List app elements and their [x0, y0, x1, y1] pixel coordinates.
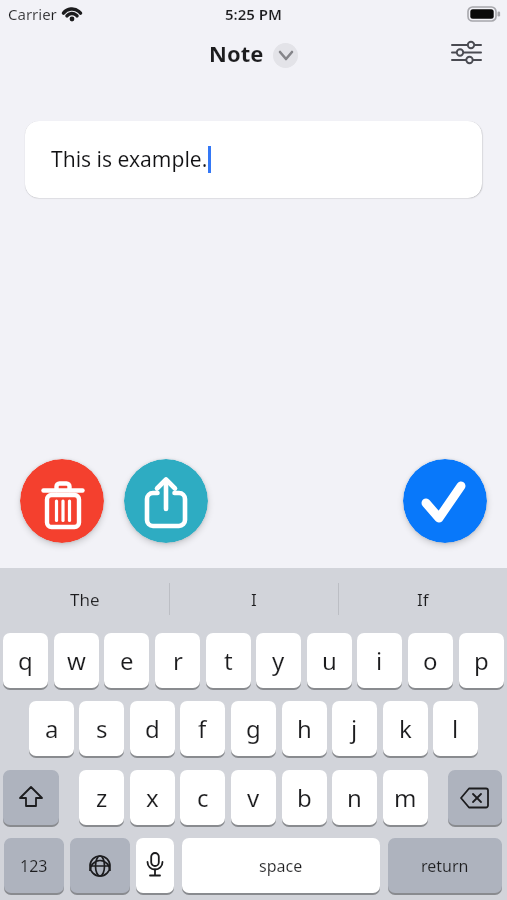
button[interactable]: d: [130, 701, 175, 756]
button[interactable]: k: [383, 701, 428, 756]
button[interactable]: o: [408, 633, 453, 688]
staticText: h: [297, 712, 312, 745]
staticText: I: [251, 588, 257, 611]
staticText: x: [146, 781, 159, 814]
staticText: 5:25 PM: [225, 4, 282, 24]
button[interactable]: e: [104, 633, 149, 688]
button[interactable]: x: [130, 770, 175, 825]
staticText: q: [18, 644, 33, 677]
staticText: d: [145, 712, 160, 745]
staticText: u: [322, 644, 337, 677]
staticText: r: [173, 644, 183, 677]
button[interactable]: If: [338, 568, 507, 630]
staticText: space: [259, 855, 303, 877]
button[interactable]: j: [332, 701, 377, 756]
staticText: 123: [20, 855, 48, 877]
button[interactable]: [136, 838, 174, 893]
button[interactable]: I: [169, 568, 338, 630]
button[interactable]: c: [180, 770, 225, 825]
button[interactable]: n: [332, 770, 377, 825]
button[interactable]: m: [383, 770, 428, 825]
button[interactable]: [20, 459, 104, 543]
button[interactable]: b: [282, 770, 327, 825]
button[interactable]: r: [155, 633, 200, 688]
button[interactable]: s: [79, 701, 124, 756]
staticText: o: [423, 644, 438, 677]
staticText: s: [96, 712, 108, 745]
button[interactable]: l: [433, 701, 478, 756]
button[interactable]: space: [182, 838, 380, 893]
staticText: If: [417, 588, 429, 611]
staticText: return: [421, 855, 469, 877]
staticText: t: [224, 644, 233, 677]
staticText: The: [70, 588, 100, 611]
staticText: e: [120, 644, 134, 677]
staticText: a: [45, 712, 59, 745]
staticText: l: [452, 712, 459, 745]
staticText: f: [198, 712, 207, 745]
button[interactable]: [444, 34, 490, 72]
button[interactable]: t: [206, 633, 251, 688]
staticText: n: [347, 781, 362, 814]
button[interactable]: f: [180, 701, 225, 756]
button[interactable]: [124, 459, 208, 543]
button[interactable]: z: [79, 770, 124, 825]
button[interactable]: Note: [209, 38, 298, 68]
button[interactable]: a: [29, 701, 74, 756]
button[interactable]: The: [0, 568, 169, 630]
button[interactable]: This is example.: [25, 121, 482, 198]
button[interactable]: q: [3, 633, 48, 688]
staticText: Carrier: [8, 4, 57, 24]
staticText: k: [399, 712, 412, 745]
staticText: This is example.: [51, 145, 208, 174]
staticText: c: [197, 781, 209, 814]
button[interactable]: [3, 770, 59, 825]
button[interactable]: w: [54, 633, 99, 688]
button[interactable]: [70, 838, 130, 893]
staticText: v: [247, 781, 260, 814]
staticText: w: [67, 644, 86, 677]
button[interactable]: i: [357, 633, 402, 688]
staticText: p: [474, 644, 489, 677]
button[interactable]: [448, 770, 502, 825]
staticText: m: [394, 781, 417, 814]
button[interactable]: 123: [4, 838, 64, 893]
button[interactable]: p: [459, 633, 504, 688]
staticText: z: [96, 781, 108, 814]
staticText: i: [376, 644, 383, 677]
button[interactable]: h: [282, 701, 327, 756]
button[interactable]: return: [388, 838, 502, 893]
button[interactable]: g: [231, 701, 276, 756]
button[interactable]: y: [256, 633, 301, 688]
staticText: b: [297, 781, 312, 814]
button[interactable]: u: [307, 633, 352, 688]
staticText: Note: [209, 38, 264, 68]
button[interactable]: v: [231, 770, 276, 825]
staticText: y: [272, 644, 285, 677]
staticText: j: [351, 712, 358, 745]
staticText: g: [246, 712, 261, 745]
button[interactable]: [403, 459, 487, 543]
